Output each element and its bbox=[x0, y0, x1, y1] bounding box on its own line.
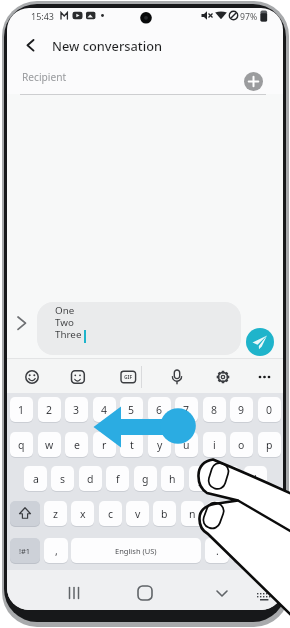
button[interactable] bbox=[165, 365, 189, 389]
button[interactable]: 2 bbox=[38, 397, 61, 422]
button[interactable] bbox=[253, 365, 277, 389]
staticText: o bbox=[238, 438, 245, 452]
button[interactable]: h bbox=[161, 466, 184, 491]
button[interactable]: t bbox=[120, 432, 143, 457]
button[interactable] bbox=[131, 579, 159, 607]
staticText: k bbox=[225, 472, 231, 486]
button[interactable] bbox=[208, 579, 236, 607]
staticText: l bbox=[254, 472, 257, 486]
button[interactable]: j bbox=[189, 466, 212, 491]
button[interactable]: g bbox=[134, 466, 157, 491]
button[interactable]: o bbox=[230, 432, 253, 457]
button[interactable] bbox=[13, 312, 31, 334]
button[interactable]: , bbox=[44, 538, 68, 563]
staticText: 15:43 bbox=[31, 10, 55, 22]
staticText: , bbox=[55, 544, 58, 558]
staticText: w bbox=[45, 438, 54, 452]
staticText: 5 bbox=[128, 403, 135, 417]
button[interactable]: 4 bbox=[93, 397, 116, 422]
staticText: z bbox=[53, 507, 58, 521]
button[interactable]: 6 bbox=[148, 397, 171, 422]
staticText: y bbox=[157, 438, 163, 452]
staticText: h bbox=[169, 472, 176, 486]
button[interactable]: w bbox=[38, 432, 61, 457]
button[interactable]: e bbox=[65, 432, 88, 457]
staticText: g bbox=[142, 472, 149, 486]
button[interactable] bbox=[234, 501, 281, 526]
staticText: 6 bbox=[156, 403, 163, 417]
button[interactable] bbox=[20, 365, 44, 389]
staticText: 9 bbox=[238, 403, 245, 417]
staticText: 3 bbox=[73, 403, 80, 417]
button[interactable] bbox=[10, 501, 40, 526]
staticText: English (US) bbox=[115, 546, 157, 556]
button[interactable]: c bbox=[99, 501, 122, 526]
button[interactable] bbox=[253, 588, 275, 606]
button[interactable]: 5 bbox=[120, 397, 143, 422]
button[interactable]: b bbox=[153, 501, 176, 526]
staticText: c bbox=[108, 507, 114, 521]
button[interactable]: 9 bbox=[230, 397, 253, 422]
button[interactable]: l bbox=[244, 466, 267, 491]
staticText: q bbox=[18, 438, 25, 452]
button[interactable]: 8 bbox=[203, 397, 226, 422]
staticText: 7 bbox=[183, 403, 190, 417]
staticText: t bbox=[130, 438, 134, 452]
button[interactable]: m bbox=[208, 501, 231, 526]
staticText: 8 bbox=[211, 403, 218, 417]
staticText: d bbox=[87, 472, 94, 486]
button[interactable]: s bbox=[51, 466, 74, 491]
staticText: GIF bbox=[124, 374, 133, 381]
staticText: j bbox=[199, 472, 202, 486]
button[interactable]: . bbox=[205, 538, 229, 563]
staticText: Recipient bbox=[22, 70, 67, 84]
button[interactable]: r bbox=[93, 432, 116, 457]
button[interactable]: 1 bbox=[10, 397, 33, 422]
button[interactable]: 0 bbox=[258, 397, 281, 422]
button[interactable]: v bbox=[126, 501, 149, 526]
button[interactable]: y bbox=[148, 432, 171, 457]
button[interactable]: 3 bbox=[65, 397, 88, 422]
staticText: f bbox=[116, 472, 120, 486]
button[interactable]: k bbox=[216, 466, 239, 491]
button[interactable] bbox=[211, 365, 235, 389]
button[interactable]: d bbox=[79, 466, 102, 491]
staticText: n bbox=[189, 507, 196, 521]
button[interactable]: x bbox=[71, 501, 94, 526]
staticText: u bbox=[183, 438, 190, 452]
staticText: 2 bbox=[46, 403, 53, 417]
button[interactable] bbox=[233, 538, 281, 563]
staticText: r bbox=[102, 438, 107, 452]
staticText: v bbox=[135, 507, 141, 521]
staticText: x bbox=[80, 507, 86, 521]
staticText: m bbox=[215, 507, 225, 521]
button[interactable] bbox=[60, 579, 88, 607]
staticText: One Two Three bbox=[55, 304, 82, 341]
staticText: p bbox=[266, 438, 273, 452]
staticText: b bbox=[161, 507, 168, 521]
staticText: a bbox=[33, 472, 39, 486]
staticText: e bbox=[74, 438, 80, 452]
staticText: s bbox=[60, 472, 66, 486]
button[interactable]: English (US) bbox=[71, 538, 201, 563]
button[interactable] bbox=[20, 66, 235, 93]
button[interactable]: 7 bbox=[175, 397, 198, 422]
staticText: !#1 bbox=[19, 546, 31, 556]
staticText: New conversation bbox=[52, 37, 163, 54]
button[interactable] bbox=[246, 328, 274, 356]
button[interactable]: n bbox=[181, 501, 204, 526]
button[interactable] bbox=[244, 72, 263, 91]
button[interactable] bbox=[66, 365, 90, 389]
button[interactable]: a bbox=[24, 466, 47, 491]
staticText: 0 bbox=[266, 403, 273, 417]
button[interactable] bbox=[116, 365, 140, 389]
button[interactable]: z bbox=[44, 501, 67, 526]
button[interactable]: f bbox=[106, 466, 129, 491]
button[interactable]: u bbox=[175, 432, 198, 457]
button[interactable] bbox=[37, 302, 241, 355]
button[interactable]: p bbox=[258, 432, 281, 457]
button[interactable]: i bbox=[203, 432, 226, 457]
button[interactable] bbox=[19, 34, 41, 56]
button[interactable]: q bbox=[10, 432, 33, 457]
button[interactable]: !#1 bbox=[10, 538, 40, 563]
